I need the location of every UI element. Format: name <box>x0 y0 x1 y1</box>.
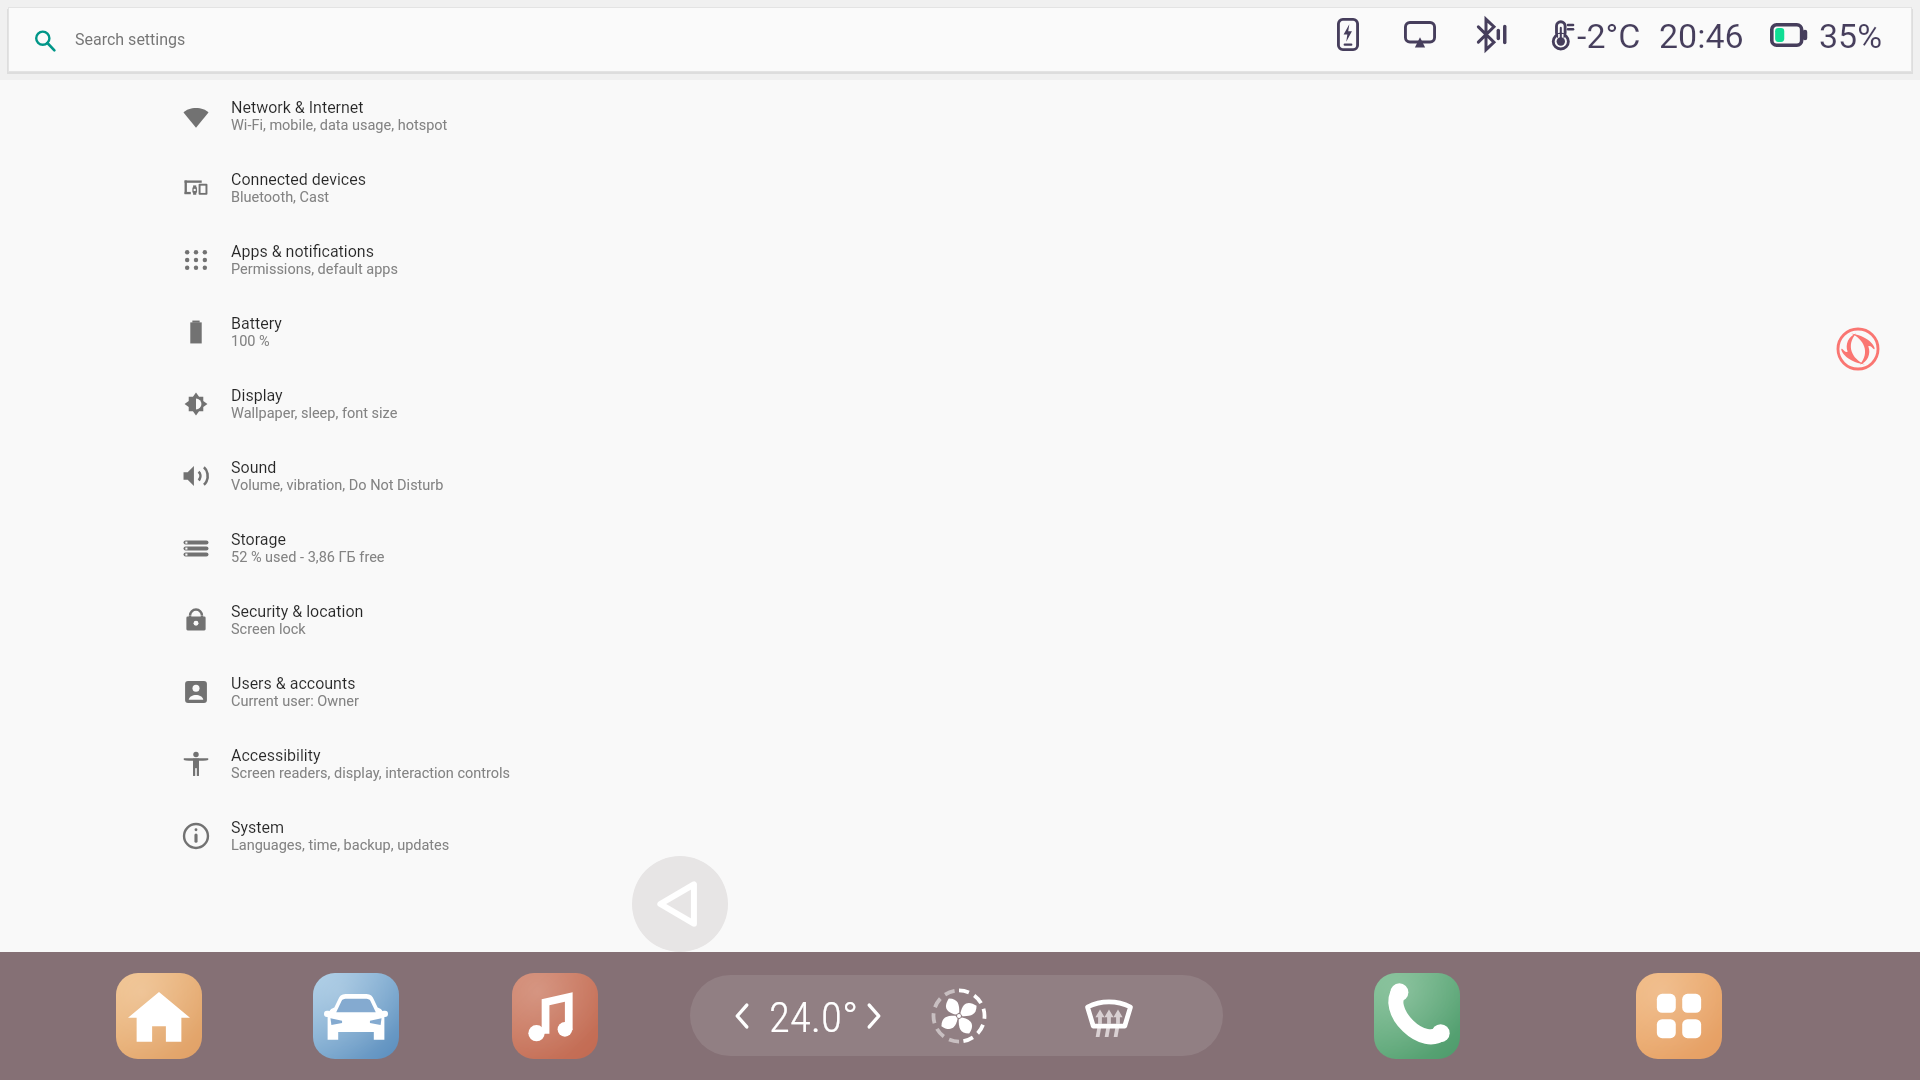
staticText: 52 % used - 3,86 ГБ free <box>231 549 385 566</box>
staticText: 100 % <box>231 333 270 350</box>
staticText: Storage <box>231 530 286 549</box>
button[interactable]: All apps <box>1636 973 1722 1059</box>
staticText: Bluetooth, Cast <box>231 189 330 206</box>
button[interactable]: Back <box>632 856 728 952</box>
staticText: Languages, time, backup, updates <box>231 837 450 854</box>
staticText: Display <box>231 386 283 405</box>
button[interactable]: Accessibility <box>0 728 1920 800</box>
staticText: Screen readers, display, interaction con… <box>231 765 511 782</box>
staticText: Network & Internet <box>231 98 364 117</box>
button[interactable]: Sound <box>0 440 1920 512</box>
staticText: Wallpaper, sleep, font size <box>231 405 398 422</box>
staticText: Apps & notifications <box>231 242 374 261</box>
button[interactable]: Home <box>116 973 202 1059</box>
button[interactable]: Network & Internet <box>0 80 1920 152</box>
button[interactable]: Search settings <box>8 7 1912 72</box>
staticText: 24.0° <box>769 992 859 1042</box>
staticText: Screen lock <box>231 621 306 638</box>
button[interactable]: Increase temperature <box>862 999 886 1033</box>
button[interactable]: System <box>0 800 1920 872</box>
button[interactable]: Rear defrost <box>1084 991 1134 1041</box>
staticText: 20:46 <box>1659 16 1744 56</box>
button[interactable]: Fan speed <box>930 987 988 1045</box>
button[interactable]: Apps & notifications <box>0 224 1920 296</box>
button[interactable]: Battery <box>0 296 1920 368</box>
staticText: Battery <box>231 314 282 333</box>
staticText: Wi-Fi, mobile, data usage, hotspot <box>231 117 448 134</box>
button[interactable]: Music <box>512 973 598 1059</box>
staticText: System <box>231 818 285 837</box>
button[interactable]: Car <box>313 973 399 1059</box>
button[interactable]: Security & location <box>0 584 1920 656</box>
button[interactable]: Cast <box>1404 21 1436 49</box>
staticText: Security & location <box>231 602 364 621</box>
button[interactable]: Brand logo <box>1836 327 1880 371</box>
staticText: -2°C <box>1577 16 1641 56</box>
button[interactable]: Decrease temperature <box>730 999 754 1033</box>
button[interactable]: Users & accounts <box>0 656 1920 728</box>
button[interactable]: Display <box>0 368 1920 440</box>
button[interactable]: Phone charging <box>1337 18 1359 51</box>
staticText: Current user: Owner <box>231 693 359 710</box>
button[interactable]: Bluetooth <box>1477 18 1507 51</box>
staticText: Users & accounts <box>231 674 356 693</box>
staticText: Sound <box>231 458 277 477</box>
staticText: Permissions, default apps <box>231 261 398 278</box>
button[interactable]: Connected devices <box>0 152 1920 224</box>
staticText: Search settings <box>75 30 186 49</box>
staticText: Accessibility <box>231 746 321 765</box>
button[interactable]: Storage <box>0 512 1920 584</box>
staticText: 35% <box>1819 16 1883 56</box>
staticText: Connected devices <box>231 170 366 189</box>
button[interactable]: Phone <box>1374 973 1460 1059</box>
staticText: Volume, vibration, Do Not Disturb <box>231 477 444 494</box>
